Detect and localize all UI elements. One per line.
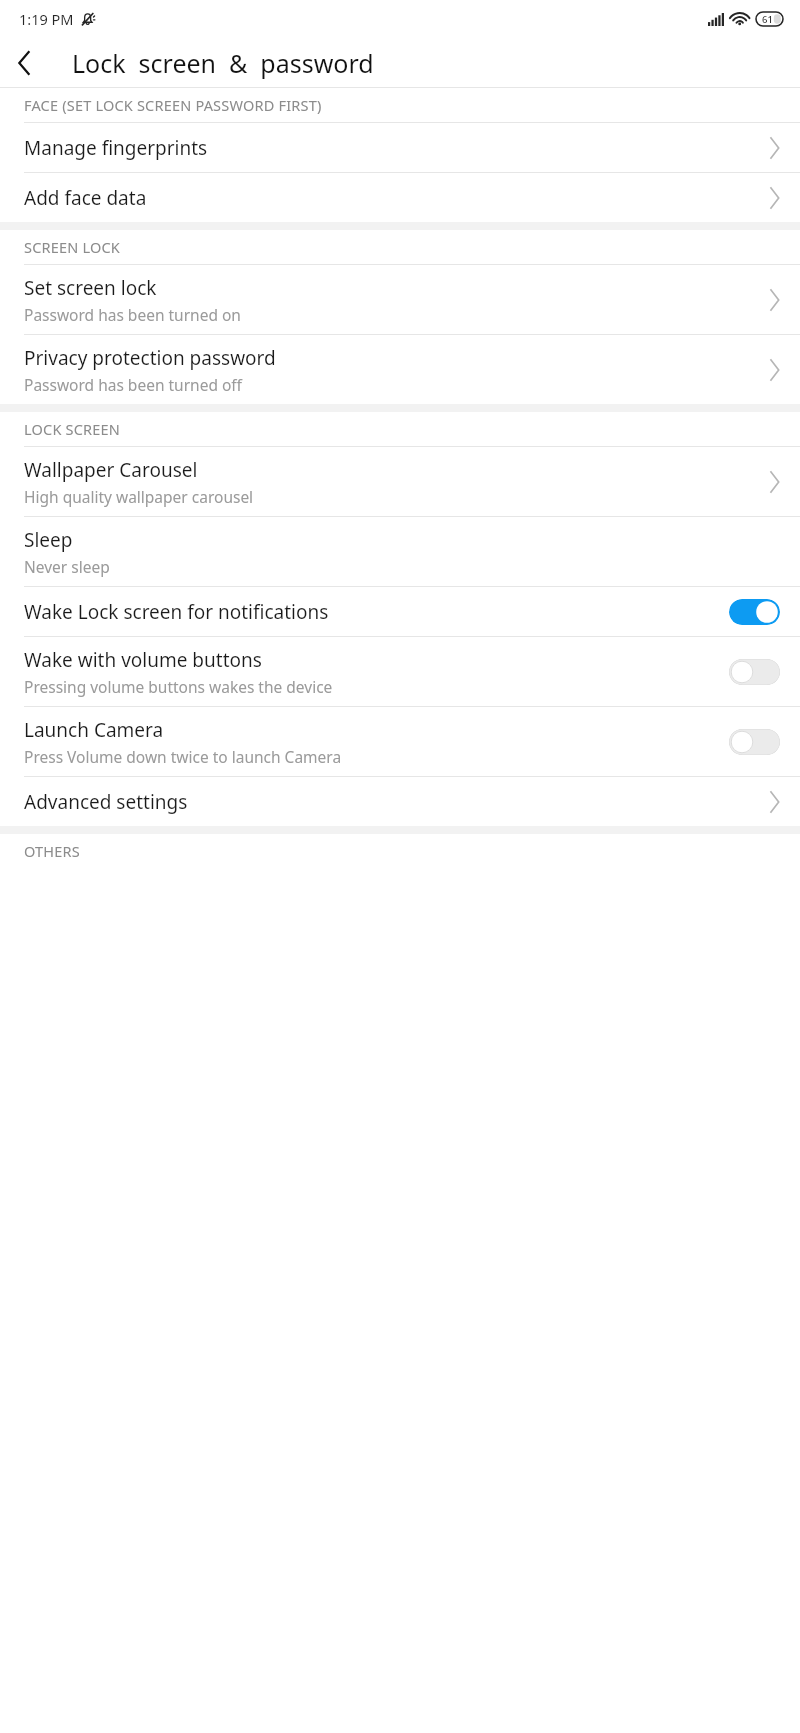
button[interactable]: Back <box>0 39 48 87</box>
staticText: Pressing volume buttons wakes the device <box>24 676 333 697</box>
button[interactable]: Manage fingerprints <box>0 123 800 172</box>
button[interactable]: Add face data <box>0 173 800 222</box>
staticText: Never sleep <box>24 556 110 577</box>
staticText: Set screen lock <box>24 275 157 301</box>
button[interactable]: Privacy protection password <box>0 335 800 404</box>
staticText: Privacy protection password <box>24 345 276 371</box>
button[interactable]: Set screen lock <box>0 265 800 334</box>
staticText: Sleep <box>24 527 73 553</box>
staticText: 61 <box>762 13 773 26</box>
staticText: FACE (SET LOCK SCREEN PASSWORD FIRST) <box>24 95 322 115</box>
staticText: LOCK SCREEN <box>24 419 121 439</box>
staticText: High quality wallpaper carousel <box>24 486 254 507</box>
staticText: Wake Lock screen for notifications <box>24 599 329 625</box>
staticText: Manage fingerprints <box>24 135 208 161</box>
staticText: Password has been turned on <box>24 304 241 325</box>
button[interactable]: Wake with volume buttons <box>0 637 800 706</box>
staticText: Advanced settings <box>24 789 188 815</box>
staticText: Launch Camera <box>24 717 164 743</box>
staticText: Lock screen & password <box>72 46 374 80</box>
button[interactable]: Sleep <box>0 517 800 586</box>
staticText: SCREEN LOCK <box>24 237 121 257</box>
staticText: Wake with volume buttons <box>24 647 262 673</box>
staticText: Wallpaper Carousel <box>24 457 198 483</box>
staticText: Press Volume down twice to launch Camera <box>24 746 342 767</box>
staticText: Password has been turned off <box>24 374 242 395</box>
button[interactable]: Wake Lock screen for notifications <box>0 587 800 636</box>
button[interactable]: Wallpaper Carousel <box>0 447 800 516</box>
button[interactable]: Advanced settings <box>0 777 800 826</box>
staticText: OTHERS <box>24 841 80 861</box>
button[interactable]: Launch Camera <box>0 707 800 776</box>
staticText: 1:19 PM <box>19 9 74 29</box>
staticText: Add face data <box>24 185 147 211</box>
